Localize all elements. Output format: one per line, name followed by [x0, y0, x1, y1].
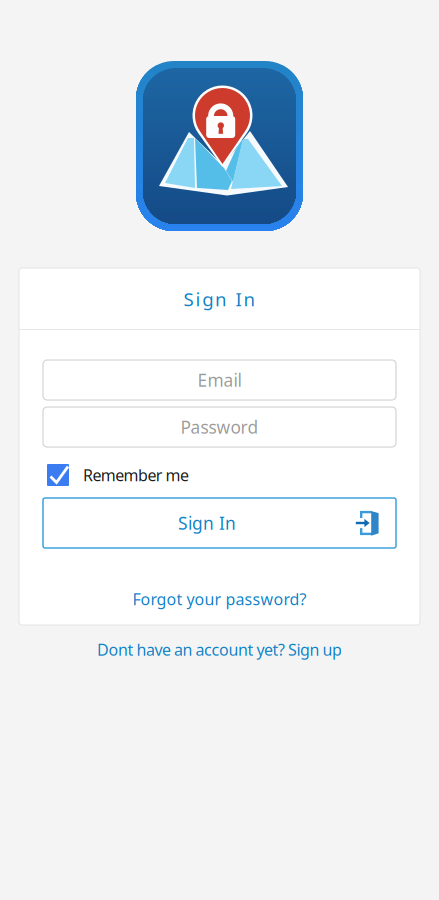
staticText: Dont have an account yet? Sign up [97, 639, 342, 660]
staticText: Forgot your password? [132, 588, 306, 610]
staticText: Password [180, 415, 258, 438]
button[interactable]: Sign In [43, 498, 396, 548]
button[interactable]: Remember me [43, 464, 396, 486]
staticText: Remember me [83, 464, 189, 486]
staticText: Sign In [184, 287, 255, 311]
button[interactable]: Forgot your password? [43, 548, 396, 625]
staticText: Email [197, 368, 241, 391]
button[interactable]: Dont have an account yet? Sign up [97, 639, 342, 660]
staticText: Sign In [178, 511, 236, 534]
